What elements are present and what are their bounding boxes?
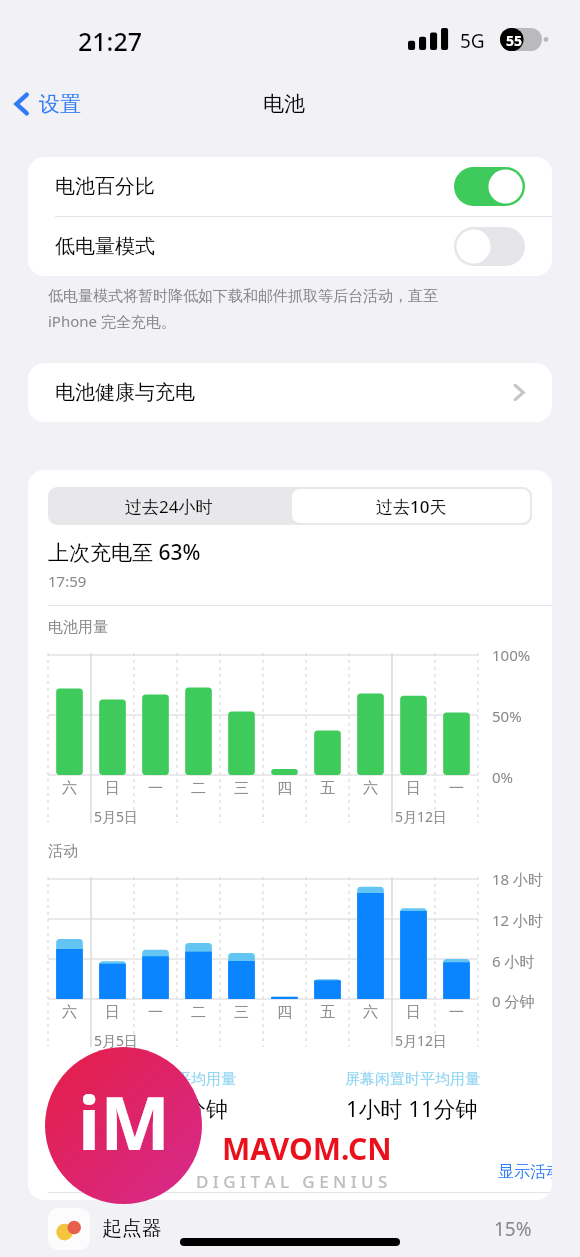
- staticText: 六: [62, 779, 77, 798]
- staticText: 三: [234, 1003, 249, 1022]
- staticText: 起点器: [102, 1216, 162, 1241]
- staticText: iM: [78, 1071, 170, 1172]
- staticText: 6 小时: [492, 951, 535, 971]
- staticText: 5月12日: [395, 807, 448, 826]
- staticText: 5G: [460, 28, 485, 54]
- button[interactable]: 低电量模式: [55, 217, 525, 276]
- staticText: 一: [148, 1003, 163, 1022]
- staticText: 21:27: [78, 24, 143, 58]
- staticText: 日: [105, 1003, 120, 1022]
- staticText: 15%: [494, 1216, 532, 1242]
- button[interactable]: Back to Settings: [14, 80, 164, 128]
- staticText: 屏幕闲置时平均用量: [345, 1070, 480, 1089]
- staticText: 五: [320, 779, 335, 798]
- staticText: 电池: [263, 91, 305, 117]
- staticText: 三: [234, 779, 249, 798]
- staticText: 55: [506, 31, 523, 50]
- staticText: 100%: [492, 645, 531, 665]
- staticText: MAVOM.CN: [222, 1128, 392, 1169]
- staticText: 日: [406, 779, 421, 798]
- staticText: 上次充电至 63%: [48, 538, 201, 567]
- staticText: 显示活动: [498, 1162, 552, 1182]
- staticText: 18 小时: [492, 869, 544, 889]
- staticText: 低电量模式: [55, 234, 155, 259]
- staticText: iPhone 完全充电。: [48, 311, 176, 331]
- staticText: 四: [277, 1003, 292, 1022]
- staticText: 二: [191, 1003, 206, 1022]
- staticText: 日: [105, 779, 120, 798]
- staticText: 二: [191, 779, 206, 798]
- button[interactable]: 电池健康与充电: [28, 363, 552, 422]
- staticText: 1小时 11分钟: [346, 1093, 478, 1123]
- staticText: 电池百分比: [55, 174, 155, 199]
- staticText: 一: [449, 779, 464, 798]
- button[interactable]: 过去10天: [292, 489, 530, 523]
- staticText: 六: [363, 1003, 378, 1022]
- staticText: 电池健康与充电: [55, 380, 195, 405]
- staticText: 六: [363, 779, 378, 798]
- staticText: 屏幕开启时平均用量: [101, 1070, 236, 1089]
- staticText: 四: [277, 779, 292, 798]
- button[interactable]: 过去24小时: [48, 487, 290, 525]
- staticText: 5月12日: [395, 1031, 448, 1050]
- staticText: 一: [449, 1003, 464, 1022]
- staticText: 6小时 3分钟: [109, 1093, 228, 1123]
- other: Back to Settings: [14, 91, 30, 117]
- staticText: 电池用量: [48, 618, 108, 637]
- staticText: 5月5日: [94, 807, 139, 826]
- staticText: 17:59: [48, 571, 87, 591]
- staticText: 5月5日: [94, 1031, 139, 1050]
- staticText: 低电量模式将暂时降低如下载和邮件抓取等后台活动，直至: [48, 287, 438, 306]
- staticText: 五: [320, 1003, 335, 1022]
- staticText: 一: [148, 779, 163, 798]
- staticText: 设置: [39, 91, 81, 117]
- staticText: 过去24小时: [125, 495, 213, 518]
- staticText: 活动: [48, 842, 78, 861]
- button[interactable]: 电池百分比: [55, 157, 525, 216]
- button[interactable]: 起点器: [48, 1200, 532, 1257]
- staticText: 50%: [492, 706, 522, 726]
- staticText: 0%: [492, 767, 514, 787]
- staticText: 过去10天: [376, 495, 447, 518]
- staticText: 日: [406, 1003, 421, 1022]
- staticText: 六: [62, 1003, 77, 1022]
- staticText: D I G I T A L G E N I U S: [196, 1170, 388, 1193]
- button[interactable]: 显示活动: [498, 1162, 552, 1182]
- staticText: 0 分钟: [492, 991, 535, 1011]
- staticText: 12 小时: [492, 910, 544, 930]
